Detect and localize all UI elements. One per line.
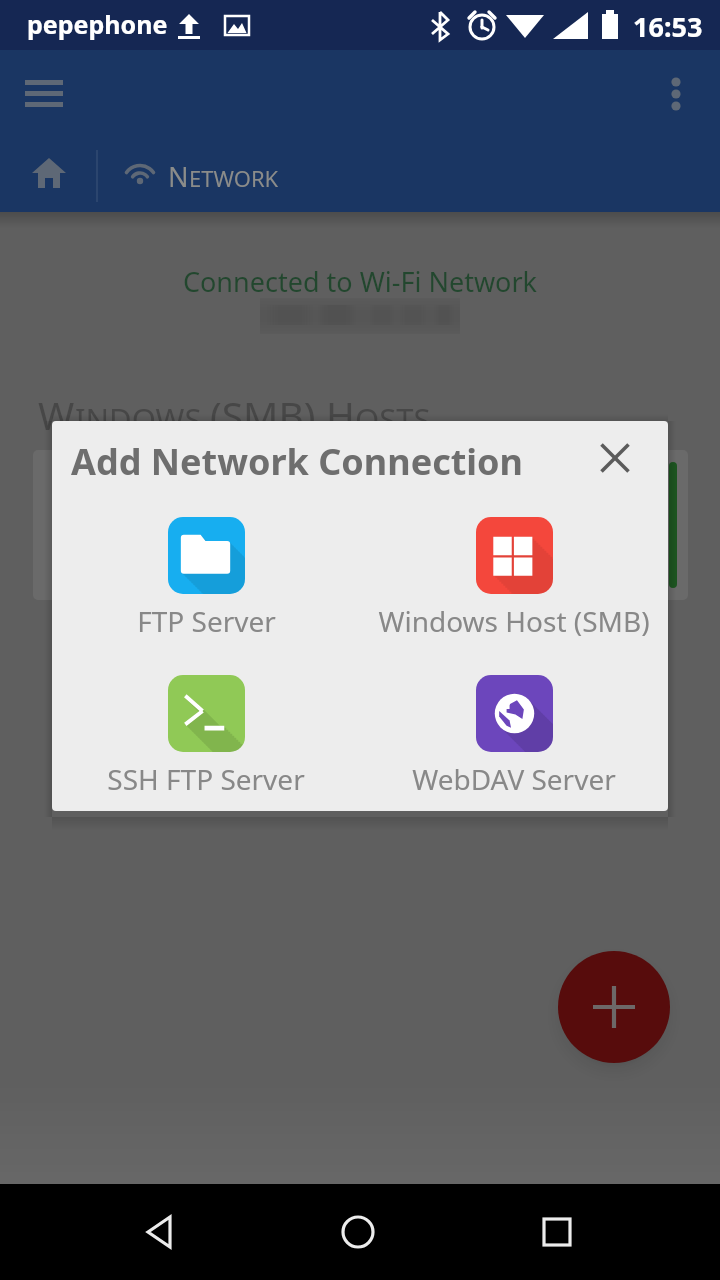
button[interactable]: More options bbox=[652, 64, 702, 122]
staticText: N bbox=[168, 158, 189, 195]
button[interactable]: Add bbox=[558, 951, 670, 1063]
button[interactable]: Home bbox=[18, 146, 80, 206]
button[interactable]: N bbox=[118, 148, 279, 204]
button[interactable]: Windows Host (SMB) bbox=[360, 517, 668, 662]
staticText: Add Network Connection bbox=[71, 437, 524, 486]
staticText: INDOWS bbox=[75, 398, 210, 440]
staticText: SSH FTP Server bbox=[107, 760, 305, 798]
staticText: Connected to Wi-Fi Network bbox=[0, 263, 720, 300]
button[interactable]: Home bbox=[328, 1202, 388, 1262]
button[interactable]: Close bbox=[586, 429, 644, 487]
button[interactable]: WebDAV Server bbox=[360, 675, 668, 811]
staticText: 16:53 bbox=[633, 8, 703, 45]
staticText: OSTS bbox=[355, 398, 431, 440]
button[interactable]: Open navigation drawer bbox=[8, 66, 80, 122]
staticText: ETWORK bbox=[189, 163, 279, 193]
button[interactable]: FTP Server bbox=[52, 517, 360, 662]
staticText: H bbox=[326, 388, 355, 441]
staticText: W bbox=[38, 388, 75, 441]
button[interactable]: Windows (SMB) host bbox=[33, 450, 688, 600]
staticText: pepephone bbox=[27, 7, 168, 41]
staticText: Windows Host (SMB) bbox=[378, 602, 650, 640]
staticText: FTP Server bbox=[137, 602, 276, 640]
button[interactable]: Back bbox=[131, 1202, 191, 1262]
staticText: (SMB) bbox=[210, 388, 326, 441]
button[interactable]: SSH FTP Server bbox=[52, 675, 360, 811]
button[interactable]: Recent apps bbox=[527, 1202, 587, 1262]
staticText: WebDAV Server bbox=[412, 760, 616, 798]
